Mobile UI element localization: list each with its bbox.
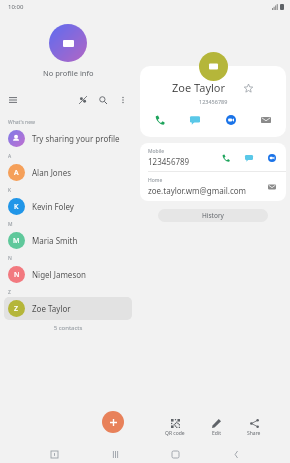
staticText: M <box>8 221 136 228</box>
staticText: What's new <box>8 119 136 126</box>
staticText: Edit <box>212 430 221 437</box>
button[interactable]: Back <box>229 447 243 461</box>
button[interactable]: Manage contacts <box>76 93 90 107</box>
button[interactable]: Video call mobile <box>265 151 278 164</box>
staticText: M <box>13 236 20 246</box>
button[interactable]: Message <box>187 112 203 128</box>
button[interactable]: Share <box>239 417 269 439</box>
button[interactable]: Screenshot <box>47 447 61 461</box>
staticText: Zoe Taylor <box>32 303 71 314</box>
button[interactable]: QR code <box>157 417 193 439</box>
staticText: N <box>8 255 136 262</box>
staticText: 5 contacts <box>0 324 136 332</box>
staticText: Try sharing your profile <box>32 133 120 144</box>
button[interactable]: Z <box>4 297 132 320</box>
staticText: Kevin Foley <box>32 201 74 212</box>
button[interactable]: Create contact <box>102 411 124 433</box>
staticText: Home <box>148 177 163 184</box>
button[interactable]: Call mobile <box>219 151 232 164</box>
button[interactable]: Add to favorites <box>242 82 254 94</box>
button[interactable]: More options <box>116 93 130 107</box>
button[interactable]: Call <box>152 112 168 128</box>
staticText: Maria Smith <box>32 235 78 246</box>
staticText: A <box>14 168 19 178</box>
staticText: 123456789 <box>199 98 228 105</box>
button[interactable]: Search <box>96 93 110 107</box>
button[interactable]: Video call <box>223 112 239 128</box>
button[interactable]: Edit <box>204 417 229 439</box>
button[interactable]: Try sharing your profile <box>4 127 132 150</box>
button[interactable]: M <box>4 229 132 252</box>
staticText: History <box>202 211 224 220</box>
staticText: A <box>8 153 136 160</box>
staticText: QR code <box>165 430 185 437</box>
button[interactable]: Message mobile <box>242 151 255 164</box>
staticText: zoe.taylor.wm@gmail.com <box>148 185 247 196</box>
staticText: Nigel Jameson <box>32 269 86 280</box>
button[interactable]: Zoe Taylor <box>140 66 286 137</box>
staticText: K <box>14 202 19 212</box>
staticText: No profile info <box>43 68 94 78</box>
button[interactable]: Contact photo <box>199 52 228 81</box>
button[interactable]: Recents <box>108 447 122 461</box>
staticText: K <box>8 187 136 194</box>
staticText: 123456789 <box>148 156 190 167</box>
staticText: N <box>14 270 20 280</box>
button[interactable]: Home <box>140 172 286 201</box>
button[interactable]: K <box>4 195 132 218</box>
button[interactable]: Send email <box>265 180 278 193</box>
staticText: 10:00 <box>8 3 24 11</box>
button[interactable]: N <box>4 263 132 286</box>
staticText: Z <box>8 289 136 296</box>
staticText: Mobile <box>148 148 165 155</box>
staticText: Alan Jones <box>32 167 71 178</box>
staticText: Share <box>247 430 261 437</box>
button[interactable]: Mobile <box>140 143 286 171</box>
staticText: Z <box>14 304 19 314</box>
button[interactable]: A <box>4 161 132 184</box>
button[interactable]: Profile avatar <box>49 24 87 62</box>
button[interactable]: Menu <box>6 93 20 107</box>
button[interactable]: Email <box>258 112 274 128</box>
button[interactable]: History <box>158 209 268 222</box>
staticText: Zoe Taylor <box>172 80 226 95</box>
button[interactable]: Home <box>168 447 182 461</box>
